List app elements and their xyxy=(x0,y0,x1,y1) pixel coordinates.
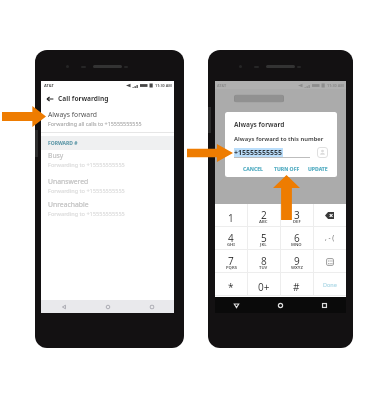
staticText: Always forward xyxy=(48,110,98,119)
button[interactable]: TURN OFF xyxy=(272,163,302,175)
staticText: MNO xyxy=(291,242,302,248)
staticText: Always forward xyxy=(234,120,285,129)
button[interactable]: Home xyxy=(258,297,302,313)
staticText: WXYZ xyxy=(291,265,303,271)
button[interactable]: 8 xyxy=(247,250,280,273)
staticText: 5 xyxy=(261,231,267,245)
staticText: 9 xyxy=(294,254,300,268)
staticText: 6 xyxy=(294,231,300,245)
staticText: CANCEL xyxy=(243,166,263,173)
staticText: 1 xyxy=(228,211,234,225)
button[interactable]: 6 xyxy=(280,227,313,250)
button[interactable]: # xyxy=(280,273,313,296)
staticText: 8 xyxy=(261,254,267,268)
button[interactable]: Home xyxy=(86,300,130,313)
button[interactable]: Busy xyxy=(41,149,174,173)
staticText: # xyxy=(293,280,300,294)
staticText: Busy xyxy=(48,151,64,160)
staticText: TUV xyxy=(259,265,268,271)
staticText: Forwarding to +15555555555 xyxy=(48,161,125,169)
button[interactable]: Unanswered xyxy=(41,175,174,199)
staticText: JKL xyxy=(260,242,267,248)
staticText: Always forward to this number xyxy=(234,135,324,143)
staticText: DEF xyxy=(293,219,301,225)
staticText: PQRS xyxy=(226,265,237,271)
button[interactable]: Back xyxy=(41,90,58,107)
button[interactable]: Back xyxy=(41,90,174,107)
staticText: Forwarding to +15555555555 xyxy=(48,187,125,195)
button[interactable]: , - ( xyxy=(313,227,346,250)
staticText: 4 xyxy=(228,231,234,245)
button[interactable]: 1 xyxy=(215,204,247,227)
button[interactable]: Recents xyxy=(302,297,346,313)
button[interactable]: Back xyxy=(215,297,258,313)
button[interactable]: 9 xyxy=(280,250,313,273)
other: Delete xyxy=(313,204,346,227)
staticText: Done xyxy=(323,281,337,288)
button[interactable]: 7 xyxy=(215,250,247,273)
staticText: 2 xyxy=(261,208,267,222)
staticText: Forwarding to +15555555555 xyxy=(48,210,125,218)
button[interactable]: Unreachable xyxy=(41,198,174,222)
staticText: * xyxy=(228,280,234,294)
button[interactable]: Back xyxy=(41,300,86,313)
button[interactable]: Recents xyxy=(130,300,174,313)
button[interactable]: 0+ xyxy=(247,273,280,296)
staticText: 3 xyxy=(294,208,300,222)
staticText: AT&T xyxy=(217,83,227,88)
other: Keyboard xyxy=(313,250,346,273)
staticText: Unreachable xyxy=(48,200,89,209)
staticText: TURN OFF xyxy=(274,166,300,173)
button[interactable]: Keyboard xyxy=(313,250,346,273)
button[interactable]: 4 xyxy=(215,227,247,250)
button[interactable]: CANCEL xyxy=(241,163,265,175)
button[interactable]: 2 xyxy=(247,204,280,227)
staticText: 0+ xyxy=(258,280,270,294)
button[interactable]: UPDATE xyxy=(306,163,330,175)
staticText: ABC xyxy=(259,219,268,225)
button[interactable]: 5 xyxy=(247,227,280,250)
staticText: +15555555555 xyxy=(234,148,283,158)
button[interactable]: +15555555555 xyxy=(234,147,310,158)
staticText: AT&T xyxy=(44,83,54,88)
staticText: 7 xyxy=(228,254,234,268)
button[interactable]: Always forward xyxy=(41,108,174,130)
staticText: FORWARD # xyxy=(48,140,78,147)
staticText: Call forwarding xyxy=(58,94,109,103)
staticText: , - ( xyxy=(325,233,335,242)
button[interactable]: Done xyxy=(313,273,346,296)
button[interactable]: Delete xyxy=(313,204,346,227)
button[interactable]: 3 xyxy=(280,204,313,227)
staticText: 11:30 AM xyxy=(155,83,172,88)
staticText: 11:30 AM xyxy=(327,83,344,88)
button[interactable]: * xyxy=(215,273,247,296)
staticText: GHI xyxy=(227,242,235,248)
staticText: UPDATE xyxy=(308,166,328,173)
staticText: Forwarding all calls to +15555555555 xyxy=(48,120,142,127)
staticText: Unanswered xyxy=(48,177,89,186)
button[interactable]: Choose contact xyxy=(316,146,329,159)
